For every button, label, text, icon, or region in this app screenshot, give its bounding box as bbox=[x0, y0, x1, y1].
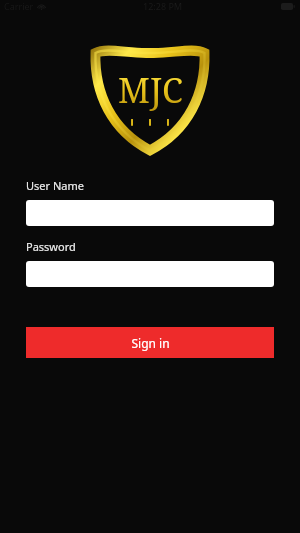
button[interactable] bbox=[26, 261, 274, 287]
staticText: Carrier bbox=[4, 0, 34, 12]
button[interactable]: Sign in bbox=[26, 327, 274, 358]
staticText: User Name bbox=[26, 178, 84, 193]
button[interactable] bbox=[26, 200, 274, 226]
staticText: Sign in bbox=[131, 335, 170, 351]
staticText: Password bbox=[26, 239, 76, 254]
staticText: MJC bbox=[118, 67, 183, 113]
staticText: 12:28 PM bbox=[143, 0, 183, 12]
